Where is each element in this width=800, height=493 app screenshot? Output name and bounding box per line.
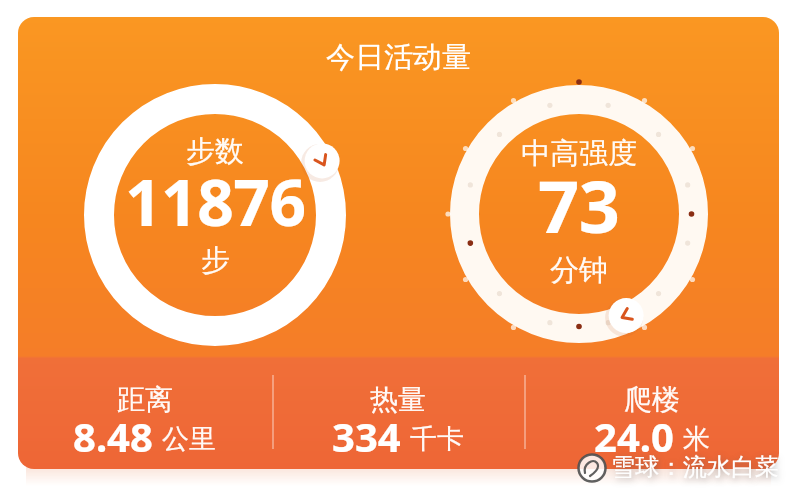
button[interactable]: 热量 [271,362,525,469]
staticText: 千卡 [410,422,464,456]
staticText: 8.48 [73,409,153,463]
staticText: 步数 [186,133,244,170]
staticText: 今日活动量 [326,39,471,76]
staticText: 24.0 [594,409,674,463]
button[interactable]: 步数 [71,71,359,359]
button[interactable]: 今日活动量 [18,17,779,469]
staticText: 米 [683,422,710,456]
staticText: 雪球：流水白菜 [611,452,779,482]
staticText: 距离 [117,382,173,417]
button[interactable]: 爬楼 [525,362,779,469]
staticText: 热量 [370,382,426,417]
staticText: 爬楼 [624,382,680,417]
staticText: 分钟 [550,252,608,289]
staticText: 334 [332,409,401,463]
button[interactable]: 距离 [18,362,271,469]
button[interactable]: 雪球：流水白菜 [577,452,779,482]
staticText: 73 [538,156,620,254]
staticText: 步 [201,242,230,279]
staticText: 11876 [125,158,306,245]
staticText: 中高强度 [521,135,637,172]
staticText: 公里 [162,422,216,456]
button[interactable]: 中高强度 [437,72,721,356]
